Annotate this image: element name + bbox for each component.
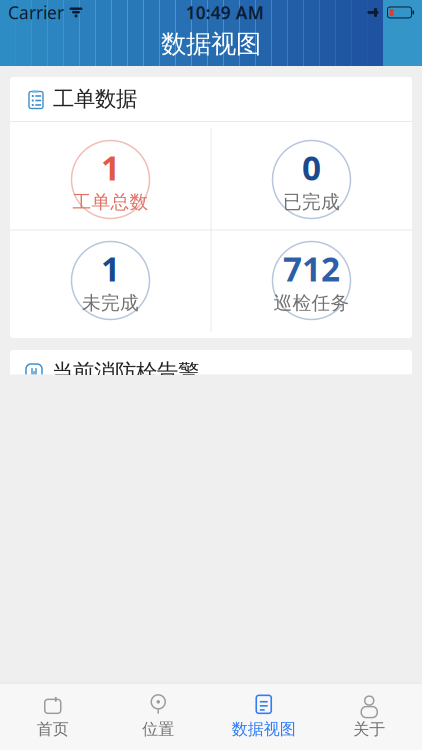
button[interactable]: 位置 bbox=[105, 687, 211, 744]
staticText: 1 bbox=[101, 246, 120, 291]
staticText: 工单数据 bbox=[53, 86, 137, 112]
staticText: 未完成 bbox=[82, 292, 139, 315]
staticText: 首页 bbox=[37, 719, 69, 739]
staticText: 1 bbox=[101, 145, 120, 190]
staticText: 0 bbox=[302, 145, 321, 190]
staticText: 数据视图 bbox=[232, 719, 296, 739]
staticText: 数据视图 bbox=[161, 28, 261, 59]
staticText: 巡检任务 bbox=[273, 292, 349, 315]
staticText: Carrier bbox=[8, 1, 64, 24]
staticText: 位置 bbox=[142, 719, 174, 739]
button[interactable]: 关于 bbox=[316, 687, 422, 744]
staticText: 712 bbox=[283, 246, 340, 291]
staticText: 关于 bbox=[353, 719, 385, 739]
staticText: 已完成 bbox=[283, 191, 340, 214]
staticText: 10:49 AM bbox=[186, 1, 264, 24]
staticText: 工单总数 bbox=[72, 191, 148, 214]
staticText: 当前消防栓告警 bbox=[52, 359, 199, 385]
button[interactable]: 首页 bbox=[0, 687, 105, 744]
button[interactable]: 数据视图 bbox=[211, 687, 316, 744]
